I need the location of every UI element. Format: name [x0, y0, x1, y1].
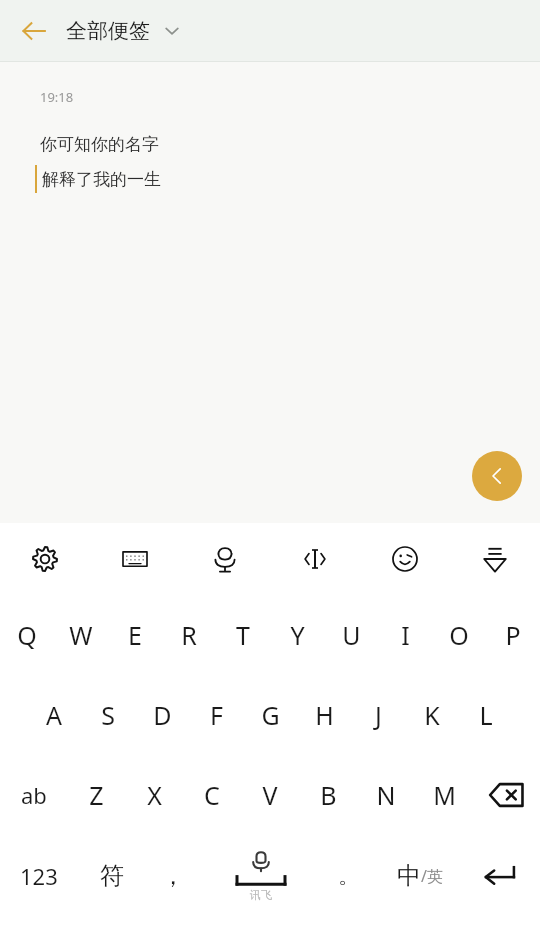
staticText: G	[261, 698, 280, 732]
staticText: Y	[290, 618, 305, 652]
button[interactable]: Enter	[462, 835, 540, 916]
staticText: Z	[89, 778, 104, 812]
button[interactable]: Settings	[0, 523, 90, 595]
button[interactable]: Y	[270, 595, 324, 675]
staticText: 中	[397, 861, 421, 891]
button[interactable]: T	[216, 595, 270, 675]
staticText: E	[128, 618, 142, 652]
staticText: Q	[17, 618, 37, 652]
button[interactable]: Voice input	[180, 523, 270, 595]
button[interactable]: Z	[67, 755, 125, 835]
button[interactable]: P	[486, 595, 540, 675]
button[interactable]: Back	[8, 5, 60, 57]
button[interactable]: Move cursor	[270, 523, 360, 595]
button[interactable]: X	[125, 755, 183, 835]
button[interactable]: J	[351, 675, 405, 755]
button[interactable]: O	[432, 595, 486, 675]
staticText: F	[210, 698, 223, 732]
button[interactable]: V	[241, 755, 299, 835]
staticText: 讯飞	[250, 888, 272, 902]
button[interactable]: C	[183, 755, 241, 835]
button[interactable]: 。	[321, 835, 377, 916]
button[interactable]: F	[189, 675, 243, 755]
button[interactable]: Keyboard layout	[90, 523, 180, 595]
button[interactable]: W	[54, 595, 108, 675]
staticText: K	[424, 698, 440, 732]
button[interactable]: ab	[0, 755, 67, 835]
staticText: 全部便签	[66, 18, 150, 44]
button[interactable]: Q	[0, 595, 54, 675]
staticText: N	[376, 778, 396, 812]
button[interactable]: N	[357, 755, 415, 835]
button[interactable]: Collapse panel	[472, 451, 522, 501]
button[interactable]: Hide keyboard	[450, 523, 540, 595]
staticText: 解释了我的一生	[42, 169, 161, 190]
button[interactable]: Space	[201, 835, 321, 916]
staticText: V	[262, 778, 278, 812]
staticText: U	[342, 618, 361, 652]
button[interactable]: 中	[377, 835, 462, 916]
staticText: 19:18	[40, 88, 74, 106]
button[interactable]: 123	[0, 835, 78, 916]
button[interactable]: S	[81, 675, 135, 755]
staticText: ab	[21, 780, 47, 810]
staticText: R	[181, 618, 197, 652]
button[interactable]: R	[162, 595, 216, 675]
button[interactable]: Emoji	[360, 523, 450, 595]
button[interactable]: A	[27, 675, 81, 755]
staticText: 你可知你的名字	[40, 134, 159, 155]
button[interactable]: K	[405, 675, 459, 755]
button[interactable]: I	[378, 595, 432, 675]
staticText: S	[101, 698, 115, 732]
staticText: O	[449, 618, 469, 652]
staticText: C	[204, 778, 220, 812]
button[interactable]: E	[108, 595, 162, 675]
button[interactable]: D	[135, 675, 189, 755]
staticText: 123	[20, 861, 58, 891]
staticText: ，	[161, 861, 185, 891]
button[interactable]: G	[243, 675, 297, 755]
button[interactable]: M	[415, 755, 473, 835]
button[interactable]: 符	[78, 835, 145, 916]
staticText: D	[153, 698, 172, 732]
staticText: L	[479, 698, 493, 732]
staticText: H	[315, 698, 334, 732]
button[interactable]: H	[297, 675, 351, 755]
button[interactable]: ，	[145, 835, 201, 916]
staticText: A	[46, 698, 62, 732]
button[interactable]: 全部便签	[66, 18, 182, 44]
button[interactable]: L	[459, 675, 513, 755]
staticText: I	[401, 618, 410, 652]
staticText: /英	[421, 865, 443, 887]
staticText: T	[236, 618, 250, 652]
staticText: 。	[338, 862, 360, 890]
button[interactable]: U	[324, 595, 378, 675]
button[interactable]: Backspace	[473, 755, 540, 835]
button[interactable]: B	[299, 755, 357, 835]
staticText: M	[433, 778, 456, 812]
staticText: 符	[100, 861, 124, 891]
staticText: B	[320, 778, 337, 812]
staticText: W	[69, 618, 93, 652]
staticText: J	[375, 698, 382, 732]
staticText: P	[505, 618, 521, 652]
staticText: X	[147, 778, 162, 812]
